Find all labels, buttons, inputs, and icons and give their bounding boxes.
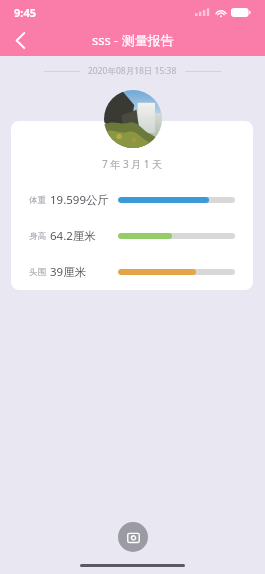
staticText: 身高 xyxy=(29,231,46,242)
button[interactable]: Take photo xyxy=(118,522,148,552)
staticText: 体重 xyxy=(29,195,46,206)
staticText: 2020年08月18日 15:38 xyxy=(88,65,177,77)
staticText: 19.599公斤 xyxy=(50,192,109,208)
button[interactable]: 身高 xyxy=(11,227,253,245)
staticText: sss - 测量报告 xyxy=(92,31,174,49)
staticText: 头围 xyxy=(29,267,46,278)
staticText: 64.2厘米 xyxy=(50,228,96,244)
staticText: 39厘米 xyxy=(50,264,87,280)
button[interactable]: Profile photo xyxy=(104,90,162,148)
button[interactable]: Back xyxy=(4,24,36,56)
staticText: 7 年 3 月 1 天 xyxy=(102,157,163,171)
button[interactable]: 头围 xyxy=(11,263,253,281)
button[interactable]: 体重 xyxy=(11,191,253,209)
staticText: 9:45 xyxy=(14,5,36,20)
